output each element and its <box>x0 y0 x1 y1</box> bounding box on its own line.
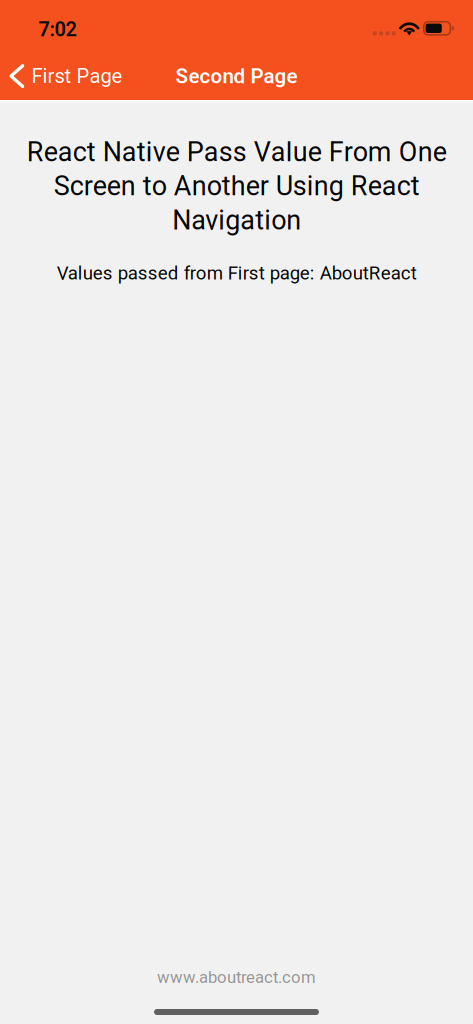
button[interactable]: Back to First Page <box>0 55 132 99</box>
staticText: www.aboutreact.com <box>157 967 316 987</box>
staticText: Second Page <box>175 64 297 88</box>
staticText: First Page <box>31 64 122 88</box>
staticText: React Native Pass Value From One Screen … <box>26 136 446 236</box>
staticText: 7:02 <box>38 18 76 41</box>
staticText: Values passed from First page: AboutReac… <box>56 262 416 284</box>
button[interactable]: www.aboutreact.com <box>157 967 316 987</box>
